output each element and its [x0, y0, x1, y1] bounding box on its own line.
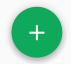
button[interactable]: Add	[10, 6, 64, 60]
